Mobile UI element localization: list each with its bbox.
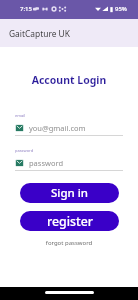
staticText: Sign in [51,185,89,201]
staticText: GaitCapture UK [9,28,70,39]
staticText: 7:15 [20,5,32,13]
button[interactable]: register [20,211,119,231]
staticText: register [47,213,93,230]
button[interactable]: Sign in [20,183,119,203]
staticText: Account Login [0,73,138,87]
staticText: you@gmail.com [29,123,86,133]
button[interactable]: forgot password [0,239,138,247]
staticText: 95% [115,5,127,13]
other: Email [15,159,24,167]
staticText: email [15,113,26,118]
staticText: password [15,148,34,153]
staticText: password [29,158,63,168]
other: Email [15,124,24,132]
